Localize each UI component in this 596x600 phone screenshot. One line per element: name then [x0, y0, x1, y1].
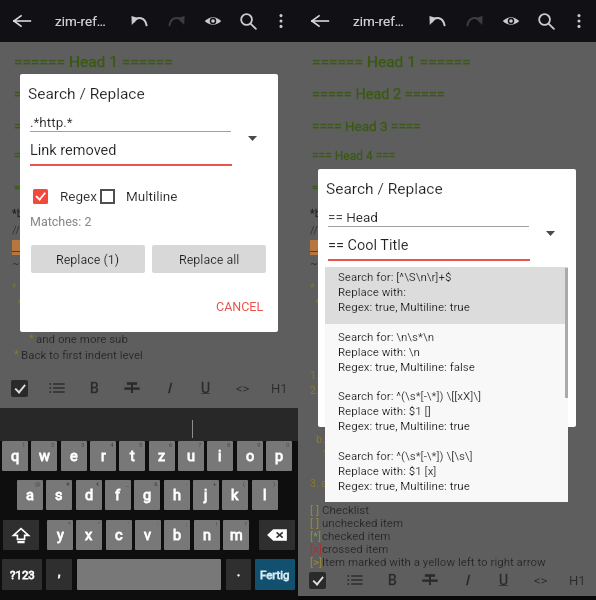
staticText: 1. numbered list	[310, 369, 386, 381]
button[interactable]: More options	[559, 1, 596, 41]
button[interactable]: i	[207, 441, 233, 471]
button[interactable]: c	[106, 520, 132, 550]
button[interactable]: v	[135, 520, 161, 550]
staticText: *	[29, 332, 34, 345]
staticText: 3	[81, 441, 85, 448]
button[interactable]: Bullet list	[38, 368, 76, 408]
staticText: Fertig	[260, 568, 290, 581]
button[interactable]: Backspace	[259, 520, 295, 550]
button[interactable]: n	[194, 520, 220, 550]
button[interactable]: Underline	[485, 564, 522, 596]
button[interactable]: Symbols	[2, 559, 42, 590]
button[interactable]: Preview	[193, 1, 233, 41]
button[interactable]: j	[193, 480, 219, 510]
staticText: a	[26, 487, 34, 504]
button[interactable]	[325, 267, 568, 324]
button[interactable]: Search for: ^(\s*[-\*]) \[\s\] Replace w…	[338, 449, 566, 504]
button[interactable]: z	[149, 441, 175, 471]
staticText: and one more sub	[36, 332, 128, 345]
staticText: I	[167, 380, 171, 396]
button[interactable]: y	[47, 520, 73, 550]
button[interactable]: Italic	[150, 368, 187, 408]
button[interactable]: Search for: \n\s*\n Replace with: \n Reg…	[338, 330, 566, 385]
button[interactable]: w	[31, 441, 57, 471]
staticText: l	[263, 487, 267, 504]
button[interactable]: b	[164, 520, 190, 550]
staticText: 2	[51, 441, 55, 448]
button[interactable]: Search for: [^\S\n\r]+$ Replace with: Re…	[338, 270, 566, 326]
button[interactable]: Fertig	[255, 559, 295, 590]
button[interactable]: d	[76, 480, 102, 510]
button[interactable]: Bullet list	[336, 564, 374, 596]
button[interactable]: Heading 1	[261, 368, 298, 408]
staticText: .*http.*	[30, 114, 73, 130]
button[interactable]: q	[2, 441, 28, 471]
button[interactable]: Undo	[119, 1, 159, 41]
button[interactable]: Shift	[3, 520, 39, 550]
button[interactable]: r	[90, 441, 116, 471]
button[interactable]: Code	[224, 368, 261, 408]
button[interactable]: t	[119, 441, 145, 471]
button[interactable]: Underline	[187, 368, 224, 408]
button[interactable]: Italic	[448, 564, 485, 596]
button[interactable]: Strikethrough	[411, 564, 448, 596]
button[interactable]: Back	[300, 1, 340, 41]
button[interactable]: Show history	[536, 219, 564, 247]
button[interactable]: o	[237, 441, 263, 471]
staticText: Link removed	[30, 142, 117, 159]
button[interactable]: e	[61, 441, 87, 471]
staticText: <>	[534, 573, 548, 588]
button[interactable]: Bold	[374, 564, 411, 596]
button[interactable]: Search	[228, 1, 268, 41]
button[interactable]: p	[266, 441, 292, 471]
button[interactable]: Checkbox	[0, 368, 38, 408]
staticText: ,	[58, 565, 61, 579]
button[interactable]: Redo	[157, 1, 197, 41]
staticText: === Head 4 ===	[312, 149, 396, 163]
button[interactable]: h	[164, 480, 190, 510]
button[interactable]: Regex	[33, 186, 97, 206]
button[interactable]: k	[222, 480, 248, 510]
button[interactable]: Multiline	[100, 186, 178, 206]
button[interactable]: f	[105, 480, 131, 510]
button[interactable]: m	[223, 520, 249, 550]
button[interactable]: Replace (1)	[31, 245, 145, 273]
button[interactable]: Redo	[455, 1, 495, 41]
staticText: Multiline	[126, 188, 178, 204]
staticText: * a bullet list	[12, 281, 70, 293]
button[interactable]: g	[134, 480, 160, 510]
staticText: r	[101, 448, 106, 465]
staticText: c	[115, 527, 123, 544]
button[interactable]: Search	[526, 1, 566, 41]
button[interactable]: Show history	[238, 124, 266, 152]
button[interactable]: Checkbox	[298, 564, 336, 596]
staticText: 1	[22, 441, 26, 448]
button[interactable]: Undo	[417, 1, 457, 41]
staticText: 1. deeper	[322, 448, 366, 460]
button[interactable]: Code	[522, 564, 559, 596]
button[interactable]: x	[76, 520, 102, 550]
staticText: ===== Head 2 =====	[14, 86, 147, 103]
button[interactable]: Comma	[46, 559, 72, 590]
button[interactable]: l	[252, 480, 278, 510]
button[interactable]: Search for: ^(\s*[-\*]) \[[xX]\] Replace…	[338, 389, 566, 444]
staticText: Search / Replace	[326, 180, 443, 198]
button[interactable]: Preview	[491, 1, 531, 41]
button[interactable]: Heading 1	[559, 564, 596, 596]
button[interactable]: Period	[226, 559, 251, 590]
button[interactable]: Replace all	[152, 245, 266, 273]
button[interactable]: a	[17, 480, 43, 510]
staticText: CANCEL	[216, 299, 264, 314]
button[interactable]: u	[178, 441, 204, 471]
staticText: !	[216, 520, 218, 527]
button[interactable]: CANCEL	[213, 294, 267, 318]
staticText: H1	[271, 381, 288, 396]
button[interactable]: Strikethrough	[113, 368, 150, 408]
button[interactable]: Bold	[76, 368, 113, 408]
staticText: 9	[257, 441, 261, 448]
staticText: "	[98, 520, 100, 527]
button[interactable]: Back	[2, 1, 42, 41]
button[interactable]: More options	[261, 1, 301, 41]
button[interactable]: s	[46, 480, 72, 510]
